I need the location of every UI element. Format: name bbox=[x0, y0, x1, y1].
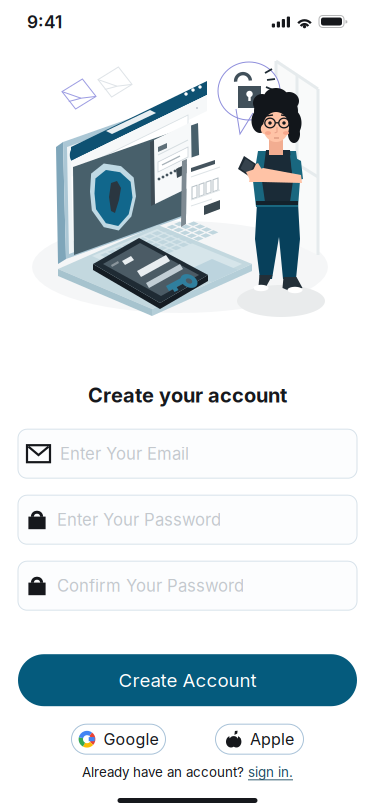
button[interactable]: Confirm Your Password bbox=[0, 561, 375, 610]
staticText: Already have an account? bbox=[82, 764, 244, 780]
staticText: Enter Your Email bbox=[60, 444, 189, 464]
button[interactable]: Enter Your Password bbox=[0, 495, 375, 544]
staticText: Confirm Your Password bbox=[57, 576, 244, 596]
staticText: Google bbox=[103, 729, 158, 749]
staticText: Apple bbox=[250, 729, 294, 749]
button[interactable]: Google bbox=[71, 724, 165, 754]
staticText: Create your account bbox=[88, 383, 287, 407]
staticText: Enter Your Password bbox=[57, 510, 221, 530]
button[interactable]: sign in. bbox=[248, 764, 293, 780]
button[interactable]: Enter Your Email bbox=[0, 429, 375, 478]
button[interactable]: Create Account bbox=[0, 654, 375, 706]
button[interactable]: Apple bbox=[215, 724, 303, 754]
staticText: 9:41 bbox=[27, 11, 62, 32]
staticText: sign in. bbox=[248, 764, 293, 780]
staticText: Create Account bbox=[118, 669, 256, 691]
